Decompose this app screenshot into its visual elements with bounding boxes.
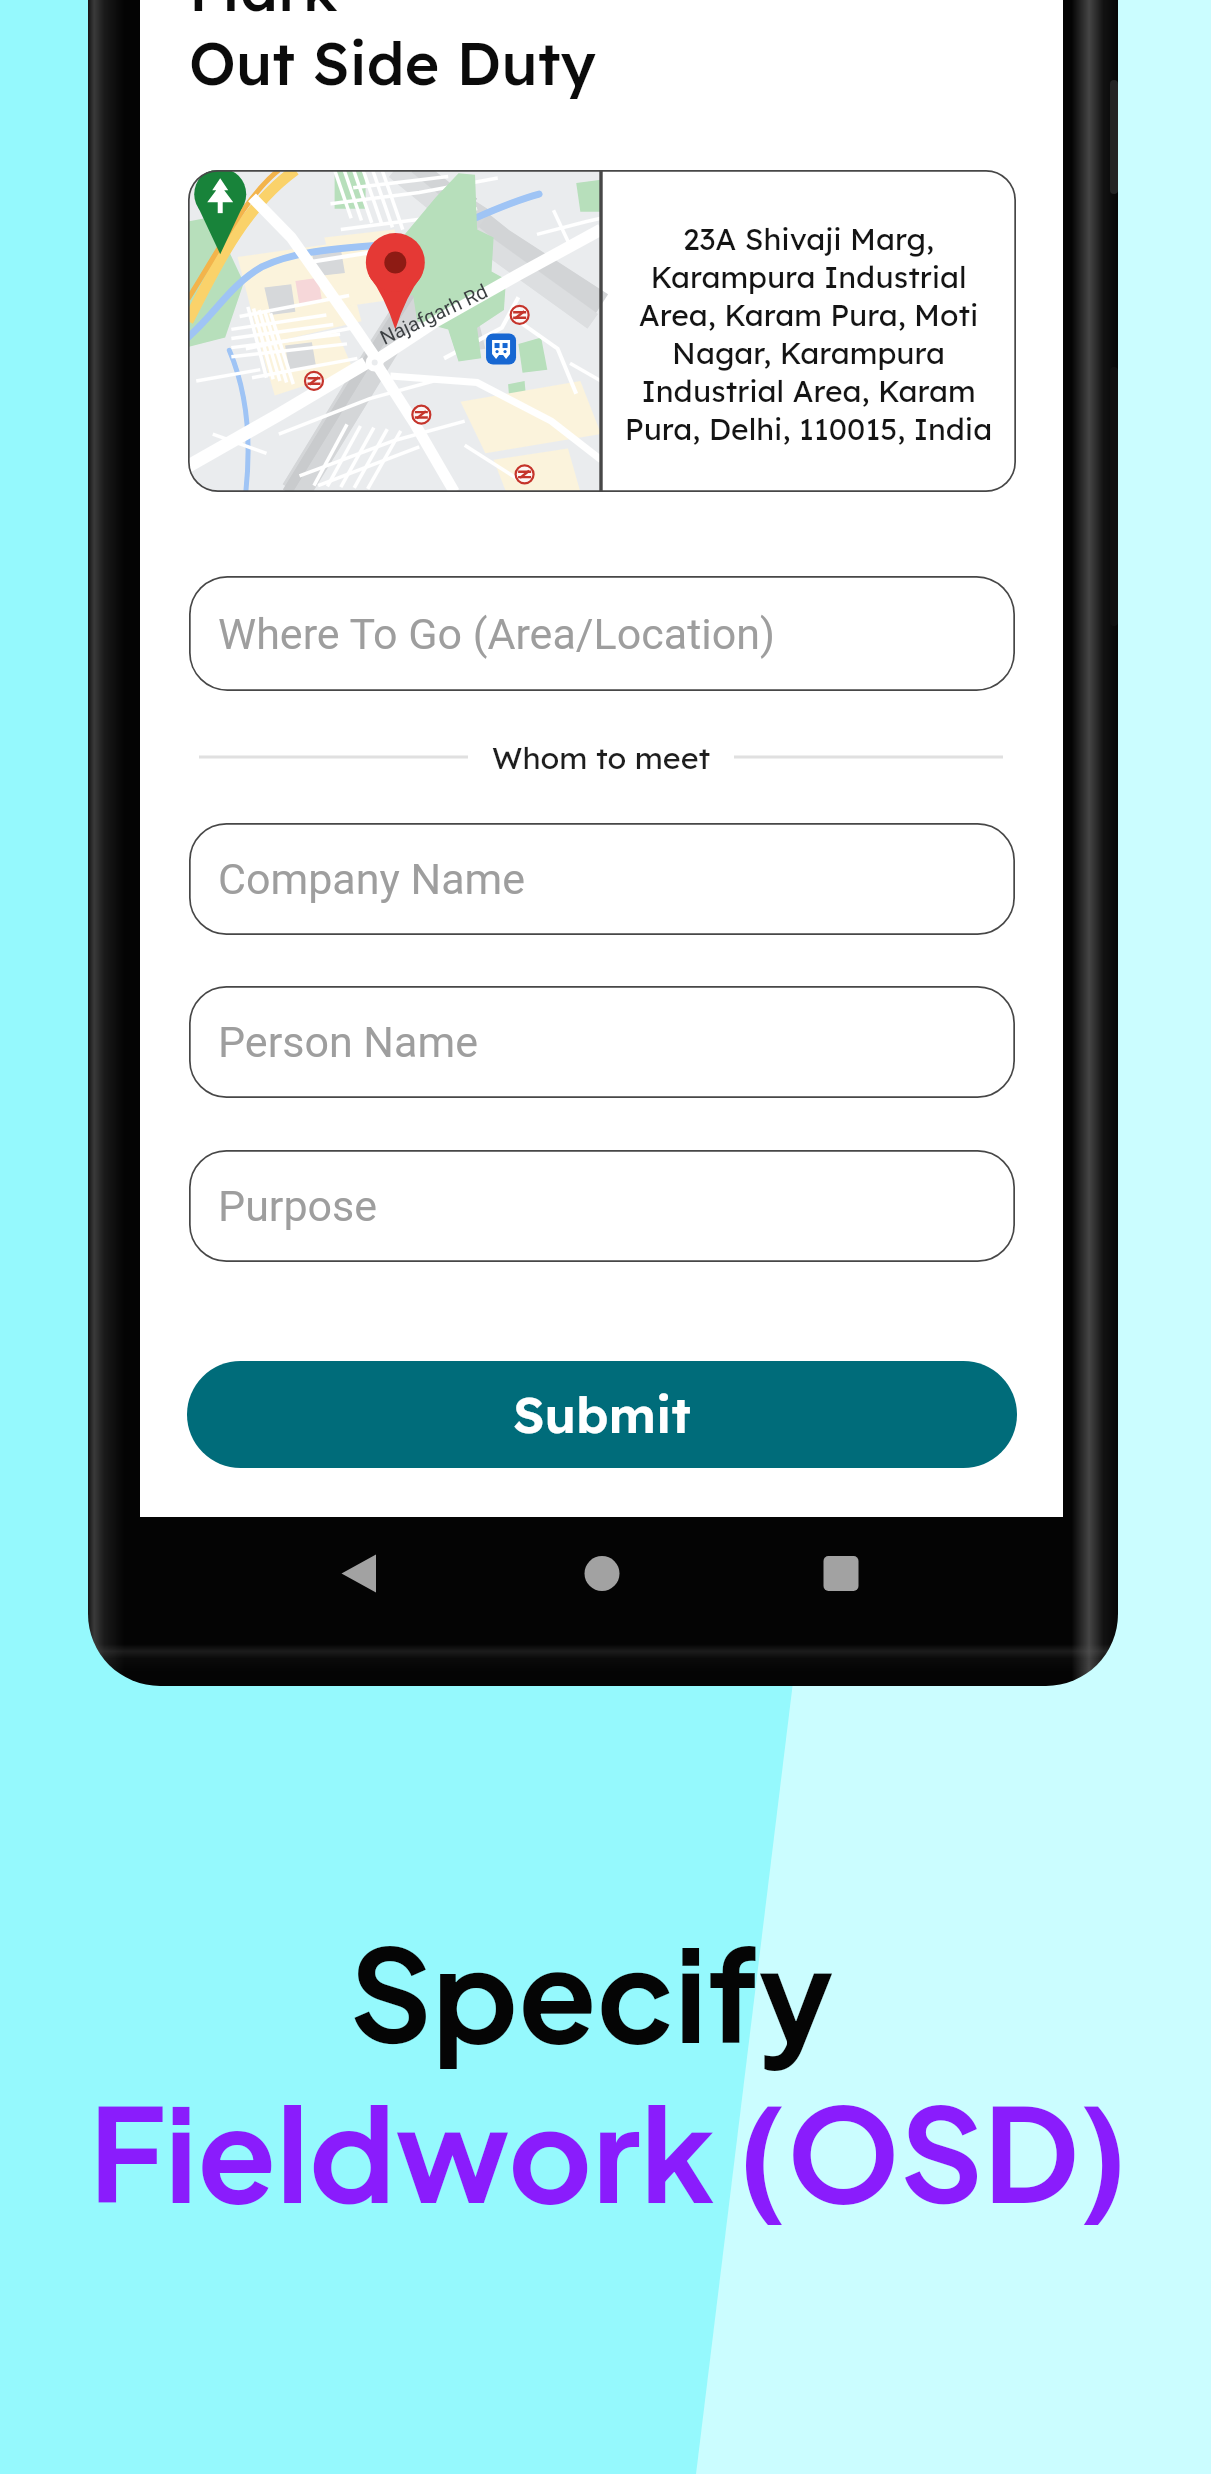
staticText: Submit	[513, 1383, 691, 1446]
staticText: Purpose	[218, 1181, 378, 1231]
button[interactable]: Company Name	[189, 823, 1015, 935]
staticText: Najafgarh Rd	[376, 279, 491, 349]
staticText: Out Side Duty	[189, 26, 596, 100]
staticText: Company Name	[218, 854, 526, 904]
staticText: 23A Shivaji Marg, Karampura Industrial A…	[615, 220, 1002, 448]
button[interactable]: Map location	[188, 170, 1016, 492]
button[interactable]: Submit	[187, 1361, 1017, 1468]
other: Map location	[188, 170, 601, 492]
staticText: Whom to meet	[492, 738, 711, 776]
staticText: Where To Go (Area/Location)	[218, 609, 775, 659]
button[interactable]: Purpose	[189, 1150, 1015, 1262]
button[interactable]: Where To Go (Area/Location)	[189, 576, 1015, 691]
staticText: Person Name	[218, 1017, 478, 1067]
staticText: Specify	[349, 1910, 834, 2071]
button[interactable]: Person Name	[189, 986, 1015, 1098]
staticText: Fieldwork (OSD)	[89, 2069, 1128, 2232]
staticText: Mark	[189, 0, 338, 26]
